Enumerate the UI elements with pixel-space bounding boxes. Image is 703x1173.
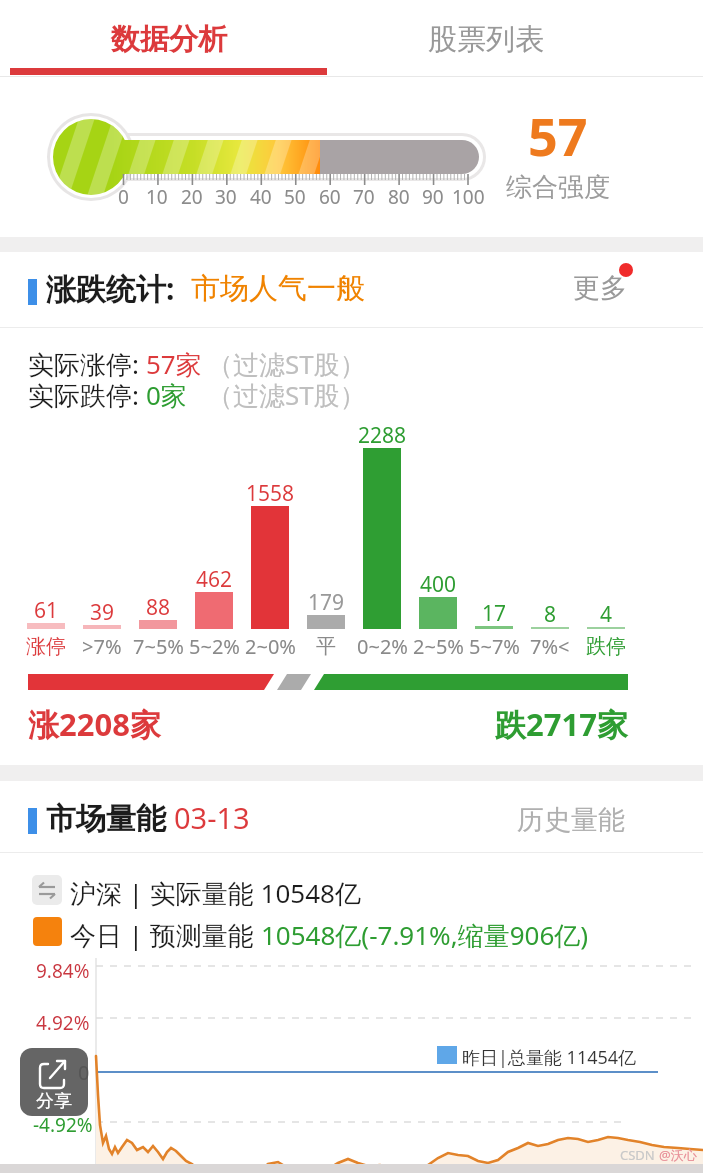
staticText: 30: [215, 184, 237, 206]
staticText: 股票列表: [428, 21, 544, 58]
staticText: CSDN: [620, 1146, 659, 1164]
staticText: 综合强度: [506, 171, 610, 203]
staticText: 1558: [246, 479, 295, 503]
staticText: 0: [78, 1059, 90, 1086]
staticText: 7~5%: [133, 633, 184, 660]
staticText: 61: [34, 596, 59, 620]
staticText: 跌停: [586, 634, 626, 659]
staticText: 市场人气一般: [191, 270, 365, 307]
staticText: 0: [118, 184, 129, 206]
staticText: 40: [250, 184, 272, 206]
staticText: 涨跌统计:: [46, 268, 191, 309]
staticText: 2~0%: [245, 633, 296, 660]
staticText: 179: [308, 588, 345, 612]
staticText: 市场量能: [46, 797, 174, 838]
staticText: 分享: [36, 1090, 72, 1113]
staticText: 4: [600, 600, 613, 624]
staticText: 03-13: [174, 798, 250, 837]
staticText: 80: [388, 184, 410, 206]
button[interactable]: 历史量能: [508, 800, 633, 840]
button[interactable]: 分享: [20, 1048, 88, 1116]
staticText: 10: [146, 184, 168, 206]
staticText: 涨停: [26, 634, 66, 659]
button[interactable]: 更多: [560, 268, 640, 308]
button[interactable]: 数据分析: [10, 8, 327, 70]
staticText: 57家: [146, 346, 202, 382]
staticText: 2~5%: [413, 633, 464, 660]
staticText: >7%: [82, 633, 122, 660]
staticText: 50: [284, 184, 306, 206]
staticText: 462: [196, 565, 233, 589]
staticText: 7%<: [530, 633, 570, 660]
staticText: 10548亿(-7.91%,缩量906亿): [261, 917, 589, 953]
staticText: 39: [90, 598, 115, 622]
staticText: （过滤ST股）: [207, 377, 366, 413]
staticText: 0~2%: [357, 633, 408, 660]
staticText: 88: [146, 593, 171, 617]
staticText: 今日 | 预测量能: [70, 917, 261, 953]
staticText: 400: [420, 570, 457, 594]
staticText: 昨日|总量能 11454亿: [462, 1045, 637, 1070]
staticText: 4.92%: [36, 1010, 90, 1036]
staticText: 60: [319, 184, 341, 206]
button[interactable]: 股票列表: [327, 8, 644, 70]
staticText: @沃心: [659, 1146, 697, 1164]
staticText: 57: [528, 100, 588, 158]
staticText: 100: [452, 184, 485, 206]
staticText: 沪深 | 实际量能 10548亿: [70, 875, 361, 911]
staticText: 8: [544, 600, 557, 624]
staticText: 跌2717家: [495, 703, 628, 745]
staticText: 20: [181, 184, 203, 206]
staticText: 涨2208家: [28, 703, 161, 745]
staticText: 0家: [146, 377, 187, 413]
staticText: 实际跌停:: [28, 377, 146, 413]
staticText: 2288: [358, 421, 407, 445]
staticText: 17: [482, 599, 507, 623]
staticText: 5~7%: [469, 633, 520, 660]
staticText: 更多: [573, 271, 627, 305]
staticText: 历史量能: [517, 803, 625, 837]
staticText: 平: [316, 634, 336, 659]
staticText: 70: [353, 184, 375, 206]
staticText: 数据分析: [111, 21, 227, 58]
staticText: 5~2%: [189, 633, 240, 660]
staticText: （过滤ST股）: [207, 346, 366, 382]
staticText: -4.92%: [33, 1112, 93, 1138]
staticText: 90: [422, 184, 444, 206]
staticText: 实际涨停:: [28, 346, 146, 382]
staticText: 9.84%: [36, 958, 90, 984]
